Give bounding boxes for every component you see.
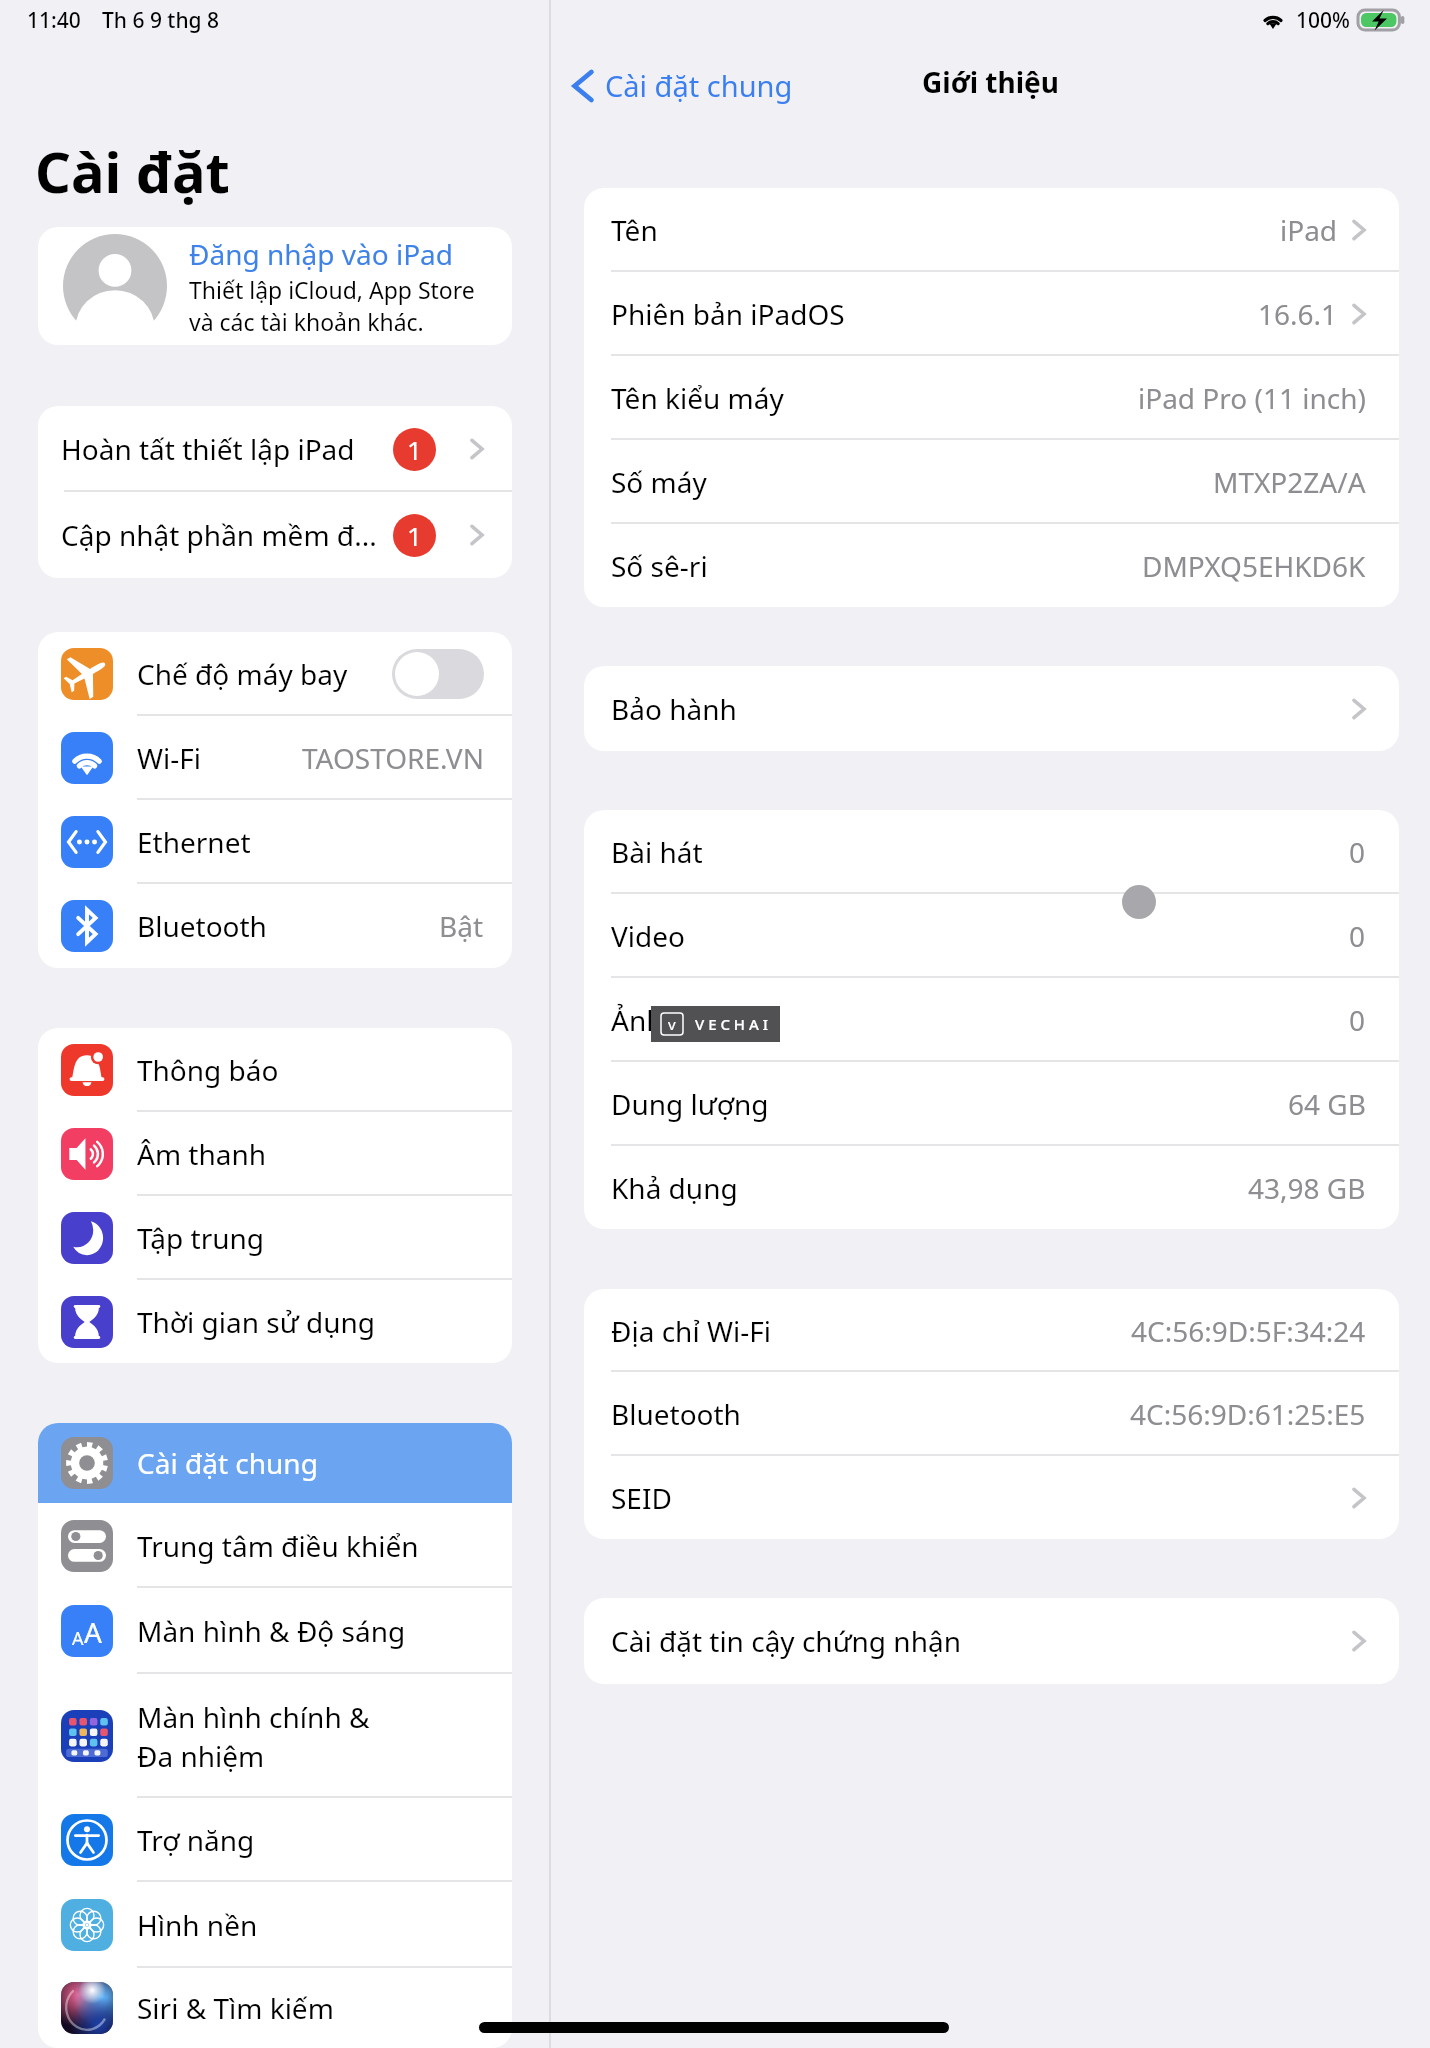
staticText: TAOSTORE.VN [302, 739, 484, 777]
staticText: Phiên bản iPadOS [611, 295, 845, 333]
staticText: iPad Pro (11 inch) [1138, 379, 1366, 417]
button[interactable]: Trung tâm điều khiển [38, 1503, 512, 1588]
staticText: Siri & Tìm kiếm [137, 1989, 334, 2027]
staticText: Bluetooth [611, 1395, 741, 1433]
staticText: 4C:56:9D:5F:34:24 [1131, 1312, 1366, 1350]
button[interactable]: Trợ năng [38, 1798, 512, 1882]
staticText: Cài đặt chung [605, 66, 793, 105]
button[interactable]: SEID [584, 1456, 1399, 1539]
staticText: Bật [439, 907, 484, 945]
button[interactable]: Ethernet [38, 800, 512, 884]
button[interactable]: Số sê-ri [584, 524, 1399, 607]
staticText: Cài đặt chung [137, 1444, 318, 1482]
button[interactable]: Ảnh [584, 978, 1399, 1062]
staticText: SEID [611, 1479, 672, 1517]
staticText: 16.6.1 [1258, 295, 1338, 333]
staticText: v [668, 1014, 676, 1034]
staticText: Màn hình & Độ sáng [137, 1612, 406, 1650]
button[interactable]: Âm thanh [38, 1112, 512, 1196]
staticText: Thiết lập iCloud, App Store [189, 274, 475, 305]
button[interactable]: Đăng nhập vào iPad [38, 227, 512, 345]
button[interactable]: Bluetooth [584, 1372, 1399, 1456]
button[interactable]: Hoàn tất thiết lập iPad [38, 406, 512, 492]
button[interactable]: Siri & Tìm kiếm [38, 1968, 512, 2048]
staticText: A [84, 1613, 102, 1651]
staticText: Th 6 9 thg 8 [102, 6, 220, 35]
staticText: Màn hình chính & [137, 1698, 370, 1736]
staticText: DMPXQ5EHKD6K [1142, 547, 1366, 585]
staticText: iPad [1280, 211, 1338, 249]
button[interactable]: Hình nền [38, 1882, 512, 1968]
staticText: Cài đặt [35, 133, 230, 207]
staticText: 100% [1296, 6, 1350, 35]
staticText: Bài hát [611, 833, 703, 871]
button[interactable]: Số máy [584, 440, 1399, 524]
staticText: Dung lượng [611, 1085, 769, 1123]
staticText: Tên kiểu máy [611, 379, 784, 417]
staticText: 1 [407, 518, 422, 553]
button[interactable]: Khả dụng [584, 1146, 1399, 1229]
staticText: Thời gian sử dụng [137, 1303, 375, 1341]
button[interactable]: Chế độ máy bay [38, 632, 512, 716]
staticText: Hoàn tất thiết lập iPad [61, 430, 355, 468]
staticText: 64 GB [1288, 1085, 1366, 1123]
button[interactable]: Dung lượng [584, 1062, 1399, 1146]
staticText: Số máy [611, 463, 707, 501]
staticText: 11:40 [27, 6, 81, 35]
button[interactable]: Màn hình chính & [38, 1674, 512, 1798]
staticText: Đa nhiệm [137, 1737, 265, 1775]
button[interactable]: Tên [584, 188, 1399, 272]
staticText: Thông báo [137, 1051, 279, 1089]
button[interactable]: A [38, 1588, 512, 1674]
staticText: MTXP2ZA/A [1213, 463, 1366, 501]
staticText: Số sê-ri [611, 547, 708, 585]
staticText: 4C:56:9D:61:25:E5 [1130, 1395, 1366, 1433]
staticText: 0 [1349, 833, 1366, 871]
button[interactable]: Thông báo [38, 1028, 512, 1112]
staticText: Ethernet [137, 823, 251, 861]
button[interactable]: Back to Cài đặt chung [573, 66, 793, 105]
button[interactable]: Bluetooth [38, 884, 512, 968]
button[interactable]: Cài đặt tin cậy chứng nhận [584, 1598, 1399, 1684]
button[interactable]: Thời gian sử dụng [38, 1280, 512, 1363]
staticText: A [72, 1626, 84, 1651]
button[interactable]: Tên kiểu máy [584, 356, 1399, 440]
button[interactable]: Cập nhật phần mềm đ... [38, 492, 512, 578]
button[interactable]: Phiên bản iPadOS [584, 272, 1399, 356]
staticText: V E C H A I [695, 1014, 768, 1034]
staticText: 0 [1349, 917, 1366, 955]
staticText: Video [611, 917, 685, 955]
staticText: Cài đặt tin cậy chứng nhận [611, 1622, 961, 1660]
button[interactable]: Video [584, 894, 1399, 978]
staticText: Hình nền [137, 1906, 258, 1944]
button[interactable]: Tập trung [38, 1196, 512, 1280]
staticText: Bảo hành [611, 690, 737, 728]
staticText: Trung tâm điều khiển [137, 1527, 419, 1565]
button[interactable]: Airplane mode toggle [392, 649, 484, 699]
staticText: và các tài khoản khác. [189, 306, 424, 337]
staticText: Wi-Fi [137, 739, 202, 777]
staticText: 43,98 GB [1248, 1169, 1366, 1207]
staticText: Tập trung [137, 1219, 265, 1257]
staticText: Khả dụng [611, 1169, 738, 1207]
button[interactable]: Wi-Fi [38, 716, 512, 800]
staticText: Chế độ máy bay [137, 655, 348, 693]
button[interactable]: Địa chỉ Wi-Fi [584, 1289, 1399, 1372]
staticText: Địa chỉ Wi-Fi [611, 1312, 771, 1350]
staticText: Ảnh [611, 1001, 664, 1039]
button[interactable]: Cài đặt chung [38, 1423, 512, 1503]
button[interactable]: Bài hát [584, 810, 1399, 894]
staticText: Cập nhật phần mềm đ... [61, 516, 377, 554]
staticText: Âm thanh [137, 1135, 267, 1173]
staticText: Đăng nhập vào iPad [189, 235, 454, 273]
button[interactable]: Bảo hành [584, 666, 1399, 751]
staticText: Trợ năng [137, 1821, 255, 1859]
staticText: Giới thiệu [922, 63, 1060, 101]
staticText: 1 [407, 432, 422, 467]
staticText: Tên [611, 211, 658, 249]
staticText: 0 [1349, 1001, 1366, 1039]
staticText: Bluetooth [137, 907, 267, 945]
